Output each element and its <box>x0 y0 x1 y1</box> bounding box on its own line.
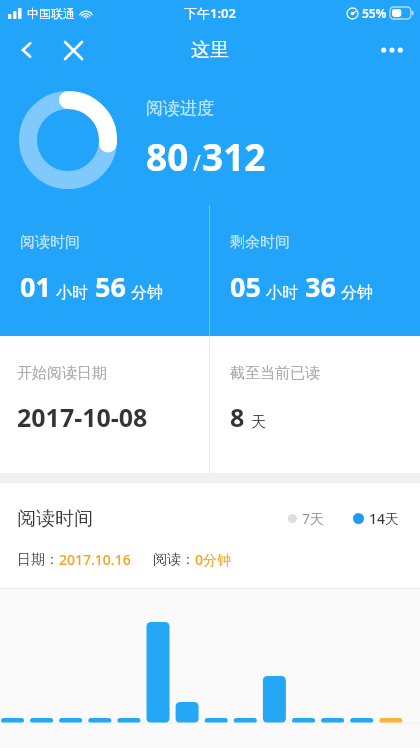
staticText: 56 <box>95 268 126 305</box>
staticText: 01 <box>20 268 51 305</box>
staticText: / <box>193 149 201 178</box>
staticText: 55% <box>362 5 387 21</box>
button[interactable]: 14天 <box>349 505 404 532</box>
staticText: 阅读进度 <box>146 98 214 119</box>
staticText: 日期： <box>17 551 59 569</box>
staticText: 2017-10-08 <box>17 400 148 434</box>
button[interactable]: Close <box>56 33 90 67</box>
button[interactable]: 开始阅读日期 <box>0 336 209 473</box>
button[interactable]: More options <box>372 30 412 70</box>
staticText: 阅读时间 <box>20 233 80 252</box>
staticText: 剩余时间 <box>230 233 290 252</box>
staticText: 14天 <box>369 509 400 528</box>
button[interactable]: 阅读时间 <box>0 205 209 336</box>
staticText: 这里 <box>191 38 229 62</box>
staticText: 阅读时间 <box>17 507 93 531</box>
staticText: 8 <box>230 400 245 434</box>
button[interactable]: 7天 <box>284 505 329 532</box>
staticText: 05 <box>230 268 261 305</box>
staticText: 中国联通 <box>27 6 75 21</box>
staticText: 小时 <box>56 283 88 303</box>
staticText: 分钟 <box>131 283 163 303</box>
staticText: 天 <box>251 413 266 432</box>
staticText: 7天 <box>302 509 325 528</box>
staticText: 2017.10.16 <box>59 550 131 569</box>
staticText: 下午1:02 <box>184 4 236 22</box>
staticText: 分钟 <box>341 283 373 303</box>
staticText: 小时 <box>266 283 298 303</box>
staticText: 80 <box>146 131 189 181</box>
staticText: 截至当前已读 <box>230 364 320 383</box>
staticText: 36 <box>305 268 336 305</box>
staticText: 0分钟 <box>195 550 232 569</box>
button[interactable]: 剩余时间 <box>210 205 420 336</box>
staticText: 312 <box>202 131 266 181</box>
button[interactable]: Back <box>10 33 44 67</box>
button[interactable]: 截至当前已读 <box>210 336 420 473</box>
staticText: 开始阅读日期 <box>17 364 107 383</box>
staticText: 阅读： <box>153 551 195 569</box>
